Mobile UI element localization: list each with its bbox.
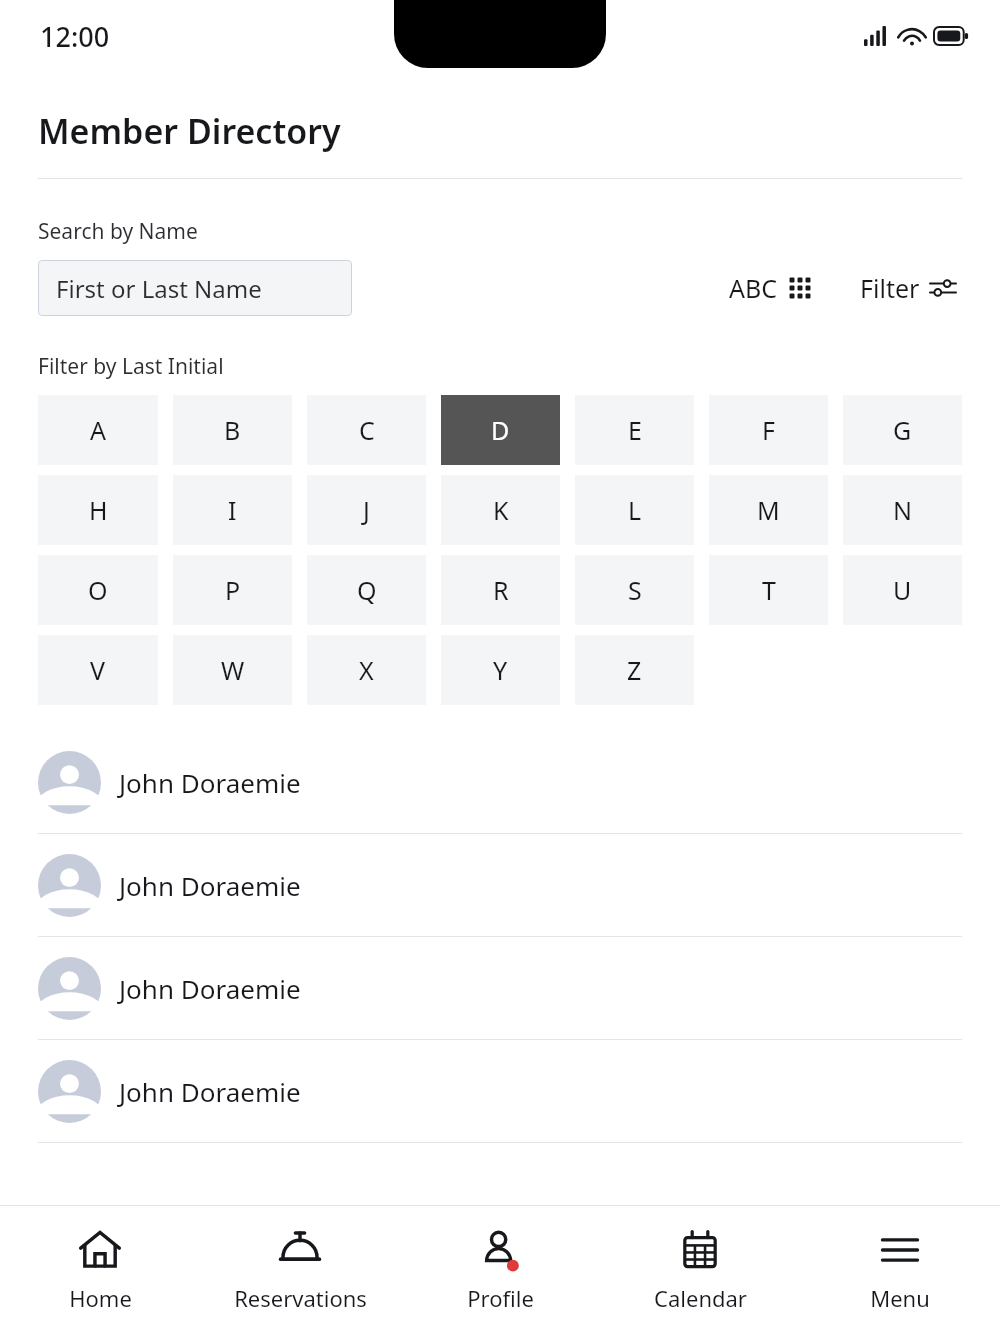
- button[interactable]: Z: [575, 635, 694, 705]
- staticText: R: [493, 573, 509, 607]
- staticText: Z: [627, 653, 642, 687]
- staticText: Q: [357, 573, 377, 607]
- button[interactable]: I: [173, 475, 292, 545]
- staticText: John Doraemie: [119, 765, 301, 800]
- staticText: Profile: [467, 1283, 534, 1313]
- staticText: Calendar: [654, 1283, 747, 1313]
- button[interactable]: S: [575, 555, 694, 625]
- staticText: Member Directory: [38, 108, 341, 154]
- staticText: C: [359, 413, 375, 447]
- staticText: K: [493, 493, 509, 527]
- staticText: B: [224, 413, 241, 447]
- staticText: M: [757, 493, 780, 527]
- staticText: Home: [69, 1283, 132, 1313]
- staticText: N: [893, 493, 913, 527]
- button[interactable]: ABC: [723, 263, 818, 313]
- button[interactable]: P: [173, 555, 292, 625]
- staticText: John Doraemie: [119, 971, 301, 1006]
- button[interactable]: Calendar: [600, 1206, 800, 1334]
- button[interactable]: C: [307, 395, 426, 465]
- button[interactable]: Reservations: [200, 1206, 400, 1334]
- staticText: L: [628, 493, 642, 527]
- staticText: O: [88, 573, 108, 607]
- staticText: First or Last Name: [56, 272, 262, 305]
- staticText: F: [762, 413, 775, 447]
- button[interactable]: D: [441, 395, 560, 465]
- staticText: W: [221, 653, 245, 687]
- button[interactable]: B: [173, 395, 292, 465]
- staticText: A: [90, 413, 106, 447]
- staticText: G: [893, 413, 912, 447]
- button[interactable]: N: [843, 475, 962, 545]
- staticText: ABC: [729, 271, 778, 305]
- button[interactable]: F: [709, 395, 828, 465]
- button[interactable]: W: [173, 635, 292, 705]
- staticText: 12:00: [40, 18, 110, 55]
- button[interactable]: X: [307, 635, 426, 705]
- button[interactable]: L: [575, 475, 694, 545]
- staticText: Search by Name: [38, 217, 198, 246]
- button[interactable]: A: [38, 395, 158, 465]
- staticText: H: [89, 493, 108, 527]
- staticText: P: [225, 573, 241, 607]
- staticText: S: [628, 573, 642, 607]
- button[interactable]: John Doraemie: [38, 1040, 962, 1142]
- button[interactable]: K: [441, 475, 560, 545]
- button[interactable]: U: [843, 555, 962, 625]
- button[interactable]: J: [307, 475, 426, 545]
- button[interactable]: E: [575, 395, 694, 465]
- button[interactable]: Home: [0, 1206, 200, 1334]
- button[interactable]: G: [843, 395, 962, 465]
- button[interactable]: M: [709, 475, 828, 545]
- staticText: Filter: [860, 271, 920, 305]
- button[interactable]: Profile: [400, 1206, 600, 1334]
- staticText: X: [359, 653, 374, 687]
- button[interactable]: O: [38, 555, 158, 625]
- staticText: Filter by Last Initial: [38, 352, 224, 381]
- staticText: D: [491, 413, 510, 447]
- button[interactable]: Menu: [800, 1206, 1000, 1334]
- button[interactable]: First or Last Name: [38, 260, 352, 316]
- button[interactable]: John Doraemie: [38, 834, 962, 936]
- staticText: T: [762, 573, 776, 607]
- staticText: John Doraemie: [119, 1074, 301, 1109]
- staticText: V: [90, 653, 106, 687]
- button[interactable]: T: [709, 555, 828, 625]
- staticText: Menu: [870, 1283, 930, 1313]
- staticText: U: [893, 573, 912, 607]
- button[interactable]: John Doraemie: [38, 731, 962, 833]
- button[interactable]: R: [441, 555, 560, 625]
- button[interactable]: H: [38, 475, 158, 545]
- button[interactable]: Q: [307, 555, 426, 625]
- staticText: I: [228, 493, 237, 527]
- button[interactable]: Y: [441, 635, 560, 705]
- button[interactable]: John Doraemie: [38, 937, 962, 1039]
- staticText: J: [363, 493, 370, 527]
- staticText: John Doraemie: [119, 868, 301, 903]
- staticText: Reservations: [234, 1283, 367, 1313]
- staticText: E: [628, 413, 642, 447]
- button[interactable]: Filter: [854, 263, 962, 313]
- button[interactable]: V: [38, 635, 158, 705]
- staticText: Y: [493, 653, 508, 687]
